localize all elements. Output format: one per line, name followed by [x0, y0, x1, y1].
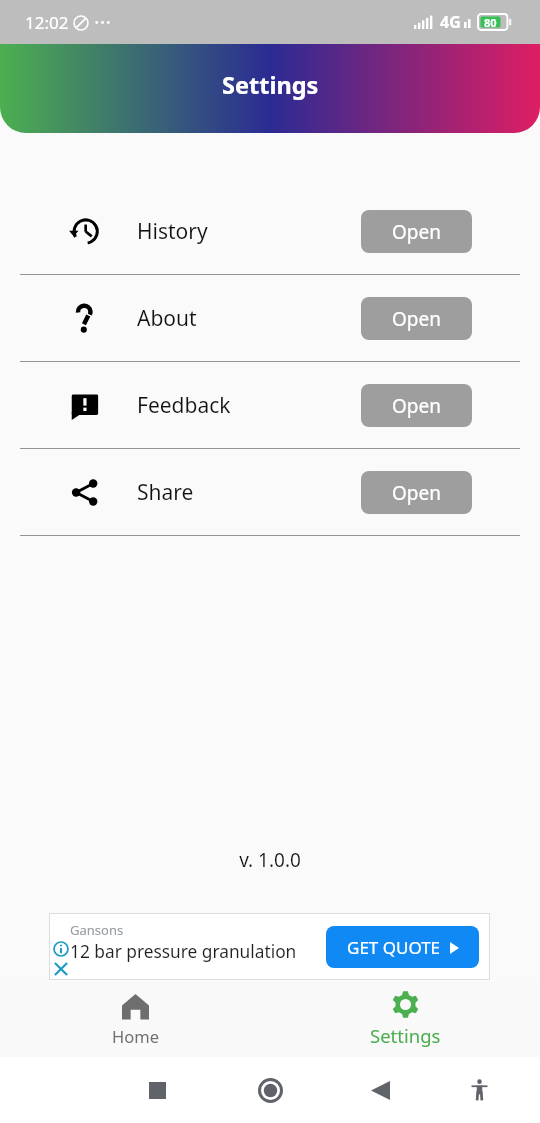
button[interactable]: Back — [371, 1081, 390, 1100]
staticText: Settings — [370, 1023, 441, 1048]
button[interactable]: Feedback — [0, 362, 540, 448]
staticText: Gansons — [70, 921, 124, 939]
button[interactable]: Home — [258, 1078, 283, 1103]
staticText: Open — [392, 480, 441, 506]
button[interactable]: Share — [0, 449, 540, 535]
staticText: Open — [392, 219, 441, 245]
button[interactable]: Accessibility — [471, 1079, 488, 1101]
button[interactable]: Open — [361, 471, 472, 514]
staticText: Settings — [222, 69, 319, 101]
button[interactable]: Gansons — [49, 913, 490, 980]
button[interactable]: Open — [361, 384, 472, 427]
staticText: GET QUOTE — [347, 936, 441, 959]
button[interactable]: Home — [0, 982, 270, 1057]
button[interactable]: Open — [361, 297, 472, 340]
staticText: History — [137, 217, 208, 246]
staticText: Open — [392, 393, 441, 419]
button[interactable]: History — [0, 188, 540, 274]
staticText: About — [137, 304, 197, 333]
staticText: 12 bar pressure granulation — [70, 940, 297, 964]
staticText: Share — [137, 478, 194, 507]
staticText: Home — [112, 1025, 159, 1047]
button[interactable]: GET QUOTE — [326, 926, 479, 968]
staticText: 80 — [484, 15, 497, 30]
staticText: Feedback — [137, 391, 231, 420]
staticText: Open — [392, 306, 441, 332]
button[interactable]: Settings — [270, 982, 540, 1057]
button[interactable]: About — [0, 275, 540, 361]
staticText: 12:02 — [25, 11, 69, 34]
button[interactable]: Open — [361, 210, 472, 253]
staticText: 4G — [440, 11, 461, 33]
staticText: v. 1.0.0 — [0, 847, 540, 873]
